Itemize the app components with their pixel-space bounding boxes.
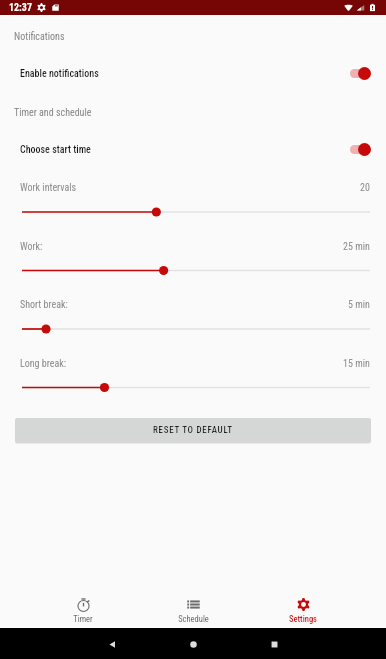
button[interactable]: Home — [183, 634, 203, 654]
staticText: Timer and schedule — [14, 107, 92, 119]
staticText: Work: — [20, 241, 43, 253]
button[interactable]: Choose start time — [0, 132, 386, 168]
button[interactable] — [0, 203, 386, 221]
button[interactable]: Recents — [264, 634, 284, 654]
staticText: Enable notifications — [20, 68, 99, 80]
button[interactable]: Back — [102, 634, 122, 654]
button[interactable]: RESET TO DEFAULT — [15, 418, 371, 442]
staticText: Settings — [289, 614, 317, 624]
staticText: RESET TO DEFAULT — [153, 425, 233, 436]
staticText: Timer — [73, 614, 93, 624]
button[interactable] — [0, 320, 386, 338]
button[interactable]: Schedule — [138, 590, 248, 632]
staticText: 20 — [360, 182, 370, 194]
button[interactable]: Enable notifications — [0, 56, 386, 92]
staticText: Schedule — [178, 614, 209, 624]
staticText: 15 min — [343, 358, 370, 370]
button[interactable]: Timer — [28, 590, 138, 632]
staticText: 25 min — [343, 241, 370, 253]
staticText: Long break: — [20, 358, 67, 370]
staticText: 12:37 — [9, 2, 32, 14]
button[interactable] — [0, 378, 386, 396]
staticText: Short break: — [20, 299, 68, 311]
staticText: Notifications — [14, 31, 65, 43]
button[interactable]: Settings — [248, 590, 358, 632]
staticText: Work intervals — [20, 182, 77, 194]
staticText: Choose start time — [20, 144, 91, 156]
staticText: 5 min — [348, 299, 370, 311]
button[interactable] — [0, 261, 386, 279]
